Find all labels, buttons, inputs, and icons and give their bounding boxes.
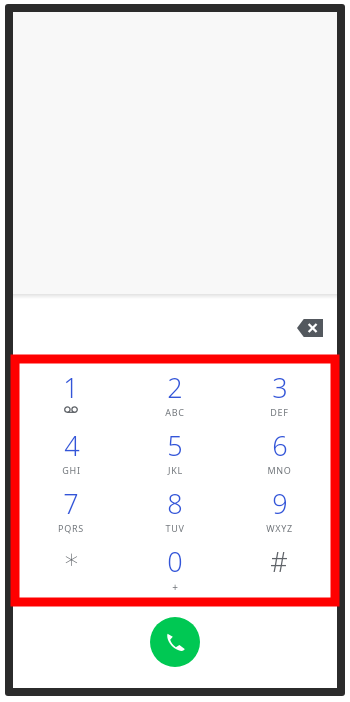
- button[interactable]: 8: [123, 485, 227, 543]
- button[interactable]: 5: [123, 427, 227, 485]
- staticText: 2: [167, 369, 183, 406]
- staticText: 7: [63, 485, 79, 522]
- button[interactable]: 9: [227, 485, 331, 543]
- staticText: ∗: [63, 543, 80, 574]
- button[interactable]: #: [227, 543, 331, 601]
- staticText: TUV: [165, 522, 185, 534]
- staticText: #: [270, 543, 288, 580]
- staticText: 9: [272, 485, 288, 522]
- staticText: WXYZ: [266, 522, 293, 534]
- staticText: PQRS: [58, 522, 84, 534]
- staticText: +: [172, 580, 178, 594]
- button[interactable]: 3: [227, 369, 331, 427]
- staticText: 8: [167, 485, 183, 522]
- button[interactable]: 6: [227, 427, 331, 485]
- button[interactable]: Backspace: [293, 314, 327, 342]
- button[interactable]: ∗: [19, 543, 123, 601]
- staticText: 6: [272, 427, 288, 464]
- staticText: 5: [167, 427, 183, 464]
- staticText: JKL: [168, 464, 183, 476]
- staticText: ABC: [165, 406, 185, 418]
- staticText: 4: [64, 427, 80, 464]
- staticText: 1: [63, 369, 79, 406]
- button[interactable]: 7: [19, 485, 123, 543]
- staticText: MNO: [267, 464, 292, 476]
- button[interactable]: 0: [123, 543, 227, 601]
- staticText: 3: [272, 369, 288, 406]
- button[interactable]: Call: [150, 617, 200, 667]
- button[interactable]: 1: [19, 369, 123, 427]
- button[interactable]: 4: [19, 427, 123, 485]
- staticText: 0: [167, 543, 183, 580]
- staticText: GHI: [62, 464, 81, 476]
- staticText: DEF: [270, 406, 289, 418]
- button[interactable]: 2: [123, 369, 227, 427]
